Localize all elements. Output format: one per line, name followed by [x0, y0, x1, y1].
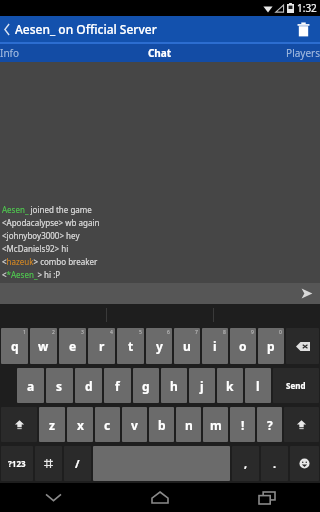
button[interactable]: Send message	[294, 283, 320, 304]
button[interactable]: .	[261, 446, 288, 481]
button[interactable]: k	[217, 368, 243, 403]
button[interactable]: l	[245, 368, 271, 403]
staticText: 0	[279, 329, 282, 336]
staticText: <Apodacalypse> wb again	[2, 217, 100, 228]
staticText: r	[99, 338, 105, 354]
staticText: Aesen_ on Official Server	[15, 21, 157, 37]
staticText: <hazeuk> combo breaker	[2, 256, 98, 267]
staticText: ?123	[8, 458, 26, 469]
staticText: 4	[110, 329, 113, 336]
button[interactable]: h	[161, 368, 187, 403]
staticText: Aesen_ joined the game	[2, 204, 92, 215]
staticText: e	[69, 338, 77, 354]
button[interactable]: s	[46, 368, 73, 403]
staticText: Chat	[106, 46, 213, 60]
staticText: Info	[0, 46, 106, 60]
staticText: u	[183, 338, 191, 354]
staticText: w	[38, 338, 49, 354]
button[interactable]: /	[64, 446, 91, 481]
staticText: ?	[267, 417, 273, 433]
staticText: 9	[251, 329, 254, 336]
button[interactable]: u	[174, 328, 200, 364]
staticText: o	[239, 338, 247, 354]
staticText: 3	[81, 329, 84, 336]
button[interactable]: q	[1, 328, 28, 364]
button[interactable]: !	[230, 407, 255, 442]
staticText: v	[131, 417, 138, 433]
button[interactable]: n	[176, 407, 201, 442]
button[interactable]: Aesen_ on Official Server	[0, 21, 163, 37]
staticText: a	[27, 378, 35, 394]
button[interactable]: Delete chat	[286, 16, 320, 42]
staticText: p	[267, 338, 275, 354]
staticText: c	[104, 417, 111, 433]
button[interactable]: w	[30, 328, 57, 364]
staticText: !	[241, 417, 245, 433]
staticText: g	[142, 378, 150, 394]
staticText: d	[85, 378, 93, 394]
staticText: <*Aesen_> hi :P	[2, 269, 61, 280]
button[interactable]: Shift	[284, 407, 319, 442]
staticText: 7	[195, 329, 198, 336]
staticText: Send	[286, 380, 306, 391]
staticText: z	[49, 417, 55, 433]
button[interactable]: y	[146, 328, 172, 364]
button[interactable]: ,	[232, 446, 259, 481]
button[interactable]: Keyboard settings	[35, 446, 62, 481]
button[interactable]: Back / hide keyboard	[0, 483, 106, 512]
button[interactable]: Send message	[0, 283, 320, 304]
button[interactable]: Chat	[106, 44, 213, 62]
staticText: k	[226, 378, 234, 394]
button[interactable]: Info	[0, 44, 106, 62]
button[interactable]: Emoji	[290, 446, 319, 481]
button[interactable]: Backspace	[286, 328, 319, 364]
staticText: b	[158, 417, 166, 433]
staticText: <johnyboy3000> hey	[2, 230, 80, 241]
staticText: h	[170, 378, 178, 394]
staticText: j	[200, 378, 204, 394]
button[interactable]: c	[95, 407, 120, 442]
button[interactable]: Home	[106, 483, 213, 512]
button[interactable]: g	[133, 368, 159, 403]
button[interactable]: p	[258, 328, 284, 364]
button[interactable]: Send	[273, 368, 319, 403]
button[interactable]: Players	[213, 44, 320, 62]
staticText: 8	[223, 329, 226, 336]
staticText: 1:32	[297, 1, 317, 15]
button[interactable]: x	[67, 407, 93, 442]
staticText: 5	[139, 329, 142, 336]
button[interactable]: r	[88, 328, 115, 364]
staticText: i	[213, 338, 217, 354]
button[interactable]: t	[117, 328, 144, 364]
staticText: x	[77, 417, 84, 433]
staticText: 6	[167, 329, 170, 336]
staticText: n	[185, 417, 193, 433]
button[interactable]: o	[230, 328, 256, 364]
button[interactable]: Shift	[1, 407, 37, 442]
staticText: /	[75, 456, 80, 471]
button[interactable]: f	[104, 368, 131, 403]
button[interactable]: e	[59, 328, 86, 364]
button[interactable]: v	[122, 407, 147, 442]
button[interactable]: a	[17, 368, 44, 403]
button[interactable]: m	[203, 407, 228, 442]
staticText: 2	[52, 329, 55, 336]
button[interactable]: j	[189, 368, 215, 403]
button[interactable]: d	[75, 368, 102, 403]
button[interactable]: ?123	[1, 446, 33, 481]
button[interactable]: Recent apps	[213, 483, 320, 512]
staticText: m	[210, 417, 222, 433]
button[interactable]: ?	[257, 407, 282, 442]
button[interactable]: z	[39, 407, 65, 442]
staticText: s	[56, 378, 63, 394]
button[interactable]: i	[202, 328, 228, 364]
button[interactable]: b	[149, 407, 174, 442]
staticText: t	[128, 338, 134, 354]
staticText: q	[11, 338, 19, 354]
staticText: ,	[244, 456, 248, 471]
staticText: Players	[213, 46, 320, 60]
